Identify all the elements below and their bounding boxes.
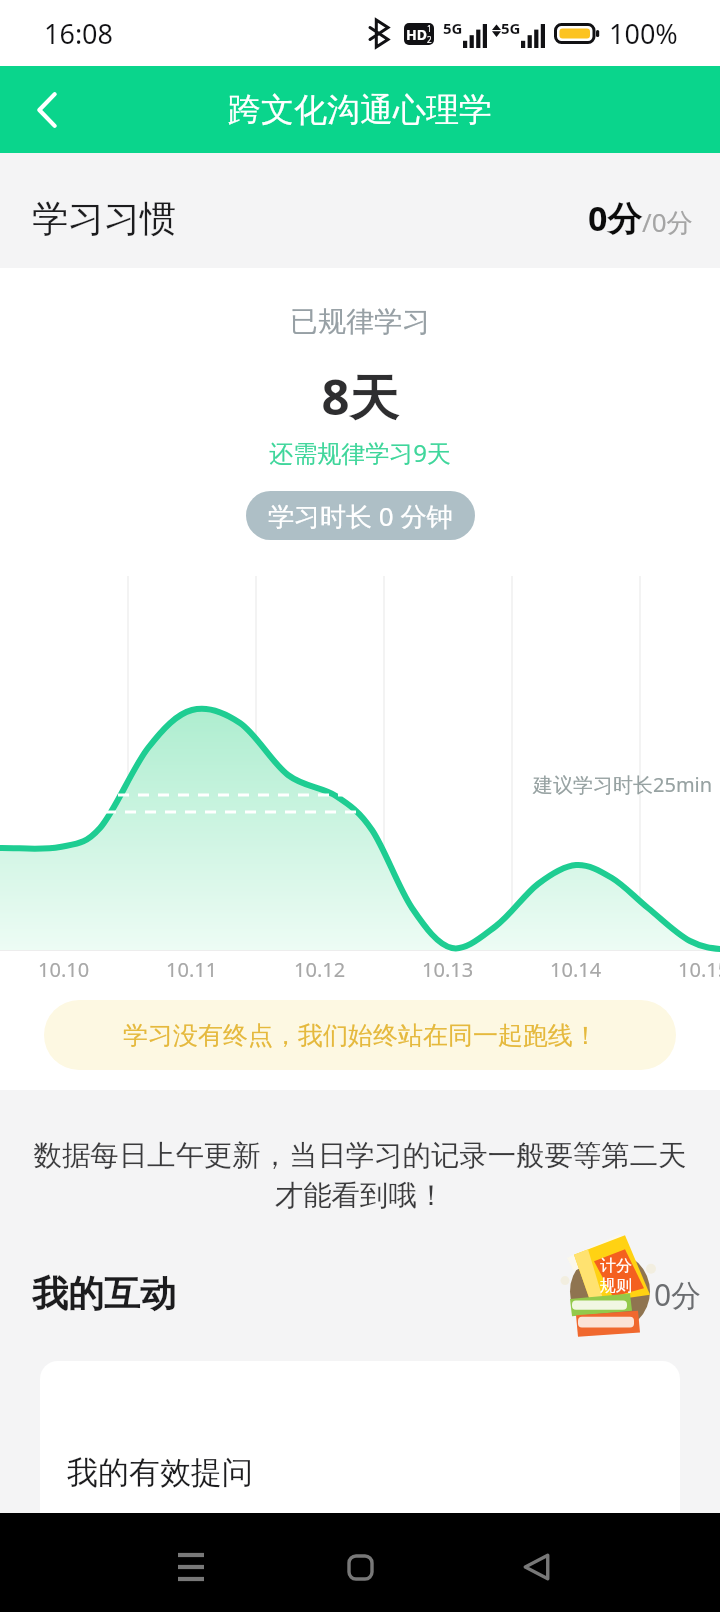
staticText: /0分 xyxy=(642,204,693,240)
staticText: 还需规律学习9天 xyxy=(0,436,720,469)
staticText: 学习时长 0 分钟 xyxy=(268,498,453,534)
staticText: 数据每日上午更新，当日学习的记录一般要等第二天 才能看到哦！ xyxy=(0,1138,720,1213)
staticText: 学习没有终点，我们始终站在同一起跑线！ xyxy=(123,1020,598,1051)
staticText: 0分 xyxy=(588,195,642,241)
staticText: 8天 xyxy=(0,363,720,430)
staticText: 学习习惯 xyxy=(32,196,176,241)
staticText: 0分 xyxy=(654,1274,702,1315)
staticText: 10.13 xyxy=(422,956,474,983)
button[interactable]: Recent apps xyxy=(155,1531,227,1603)
staticText: 16:08 xyxy=(44,15,114,52)
staticText: 规则 xyxy=(600,1276,632,1296)
staticText: 我的有效提问 xyxy=(67,1453,253,1492)
staticText: 100% xyxy=(609,15,678,52)
staticText: 10.15 xyxy=(678,956,720,983)
staticText: 10.14 xyxy=(550,956,602,983)
button[interactable]: 我的有效提问 xyxy=(40,1361,680,1521)
button[interactable]: Back xyxy=(500,1531,572,1603)
staticText: 跨文化沟通心理学 xyxy=(228,89,492,131)
staticText: HD xyxy=(406,25,427,44)
button[interactable]: Home xyxy=(324,1531,396,1603)
staticText: 我的互动 xyxy=(32,1271,176,1316)
button[interactable]: 学习时长 0 分钟 xyxy=(246,491,475,540)
staticText: 建议学习时长25min xyxy=(533,771,713,798)
staticText: 5G xyxy=(443,18,463,38)
staticText: 10.10 xyxy=(38,956,90,983)
staticText: 2 xyxy=(427,34,432,45)
staticText: 计分 xyxy=(600,1256,632,1276)
staticText: 1 xyxy=(427,23,432,34)
staticText: 10.11 xyxy=(166,956,218,983)
button[interactable]: Back xyxy=(0,66,94,153)
staticText: 已规律学习 xyxy=(0,304,720,339)
staticText: 10.12 xyxy=(294,956,346,983)
staticText: 5G xyxy=(501,18,521,38)
